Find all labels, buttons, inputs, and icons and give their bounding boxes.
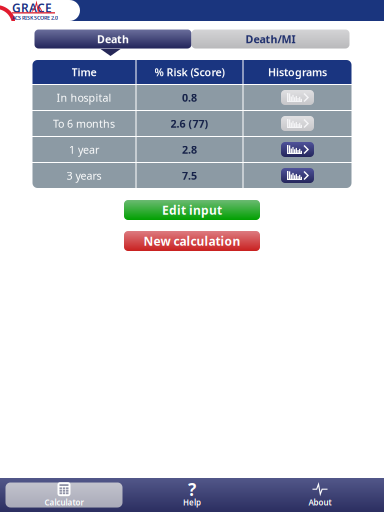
staticText: 2.8	[182, 142, 197, 157]
staticText: 1 year	[69, 142, 99, 157]
staticText: New calculation	[143, 233, 240, 249]
staticText: Death	[97, 32, 129, 46]
button[interactable]: Histogram for To 6 months	[243, 111, 351, 136]
staticText: 3 years	[66, 168, 101, 183]
button[interactable]: Histogram for In hospital	[243, 85, 351, 110]
staticText: 2.6 (77)	[170, 116, 208, 131]
button[interactable]: Histogram for 3 years	[243, 163, 351, 188]
button[interactable]: Histogram for 1 year	[243, 137, 351, 162]
staticText: Histograms	[268, 65, 327, 79]
button[interactable]: New calculation	[124, 231, 260, 251]
staticText: ACS RISK SCORE 2.0	[12, 14, 58, 21]
staticText: Time	[71, 65, 96, 79]
staticText: Death/MI	[245, 32, 295, 46]
staticText: Help	[183, 497, 201, 508]
staticText: In hospital	[56, 90, 111, 105]
staticText: 0.8	[182, 90, 197, 105]
button[interactable]: Edit input	[124, 200, 260, 220]
button[interactable]: About	[256, 478, 384, 512]
staticText: About	[308, 497, 331, 508]
button[interactable]: ?	[128, 478, 256, 512]
staticText: % Risk (Score)	[154, 65, 224, 79]
staticText: Calculator	[44, 497, 83, 508]
staticText: ?	[188, 478, 196, 501]
staticText: GRACE	[12, 0, 52, 16]
button[interactable]: Death/MI	[191, 29, 349, 48]
staticText: Edit input	[162, 202, 222, 218]
staticText: To 6 months	[53, 116, 115, 131]
button[interactable]: Death	[34, 29, 191, 48]
button[interactable]: Calculator	[0, 478, 128, 512]
staticText: 7.5	[182, 168, 197, 183]
